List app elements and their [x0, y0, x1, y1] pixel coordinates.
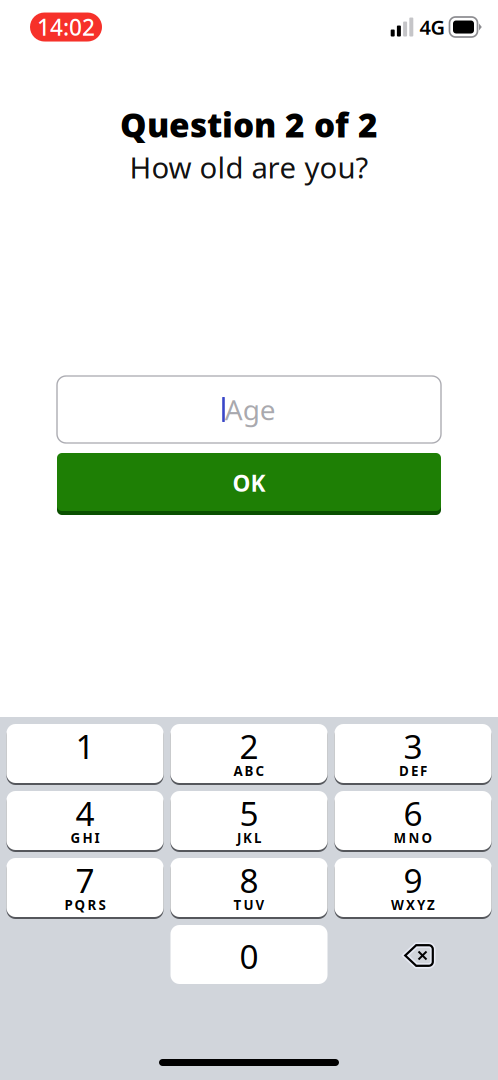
staticText: D E F	[399, 762, 427, 780]
button[interactable]: 7	[6, 858, 163, 919]
button[interactable]: 4	[6, 791, 163, 852]
button[interactable]: Age	[57, 376, 441, 443]
staticText: M N O	[393, 829, 432, 847]
button[interactable]: 9	[334, 858, 491, 919]
staticText: 8	[239, 858, 258, 902]
button[interactable]: 8	[170, 858, 327, 919]
staticText: 4G	[419, 14, 445, 40]
staticText: 2	[239, 724, 258, 768]
button[interactable]: 0	[170, 925, 327, 986]
button[interactable]: 6	[334, 791, 491, 852]
staticText: W X Y Z	[391, 896, 435, 914]
staticText: 3	[403, 724, 422, 768]
staticText: 9	[403, 858, 422, 902]
button[interactable]: Delete	[334, 925, 491, 986]
button[interactable]: 2	[170, 724, 327, 785]
button[interactable]: OK	[57, 453, 441, 515]
staticText: Question 2 of 2	[120, 102, 378, 147]
staticText: 1	[75, 724, 94, 768]
staticText: Age	[225, 391, 276, 428]
staticText: T U V	[233, 896, 264, 914]
staticText: P Q R S	[64, 896, 105, 914]
staticText: G H I	[70, 829, 99, 847]
staticText: 0	[239, 934, 258, 978]
staticText: 4	[75, 791, 94, 835]
staticText: OK	[232, 468, 265, 498]
button[interactable]: 1	[6, 724, 163, 785]
button[interactable]: 3	[334, 724, 491, 785]
button[interactable]: 5	[170, 791, 327, 852]
staticText: 5	[239, 791, 258, 835]
staticText: 6	[403, 791, 422, 835]
staticText: 7	[75, 858, 94, 902]
staticText: A B C	[233, 762, 264, 780]
staticText: J K L	[237, 829, 261, 847]
staticText: 14:02	[37, 12, 95, 42]
staticText: How old are you?	[129, 147, 368, 186]
